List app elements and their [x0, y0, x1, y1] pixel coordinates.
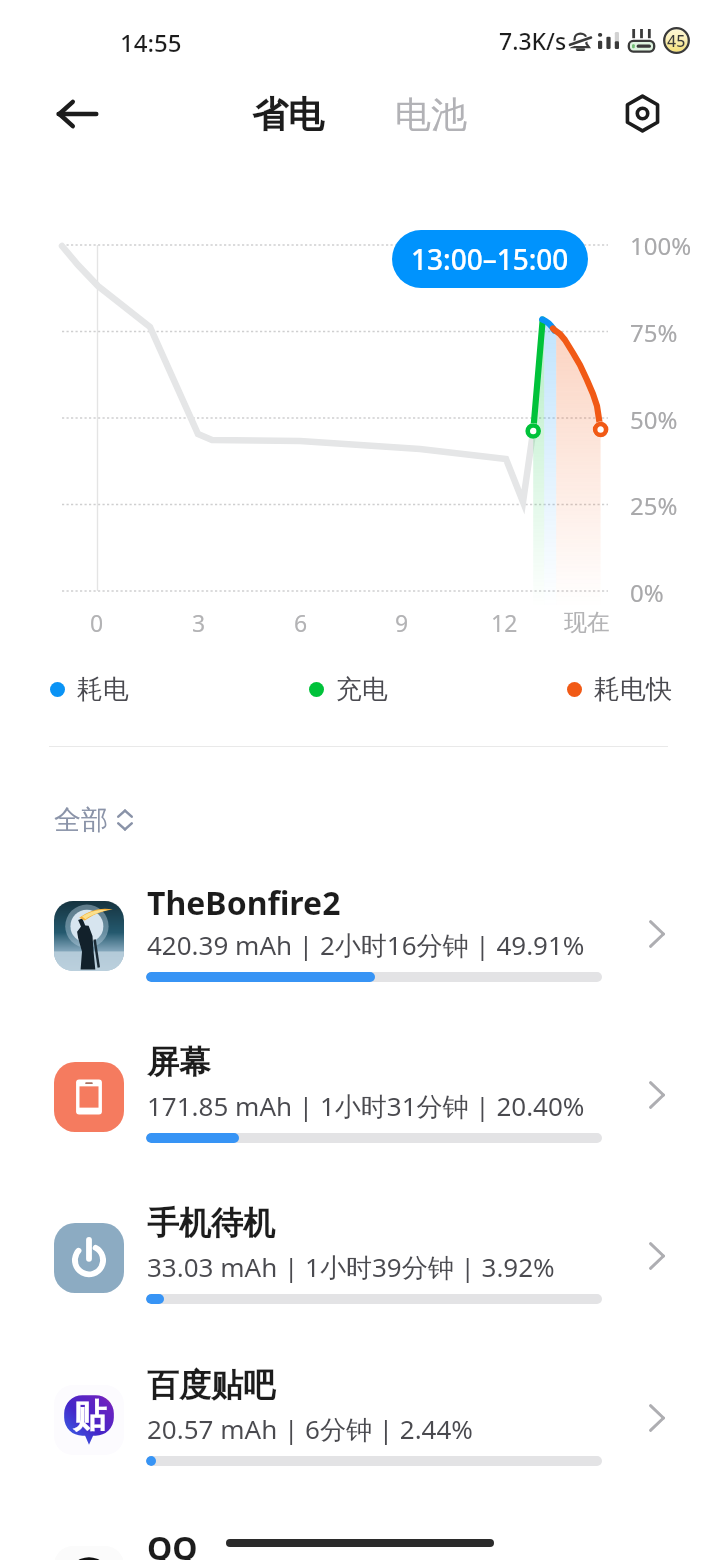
staticText: 45: [667, 30, 686, 52]
staticText: 现在: [564, 608, 610, 637]
button[interactable]: [0, 1359, 720, 1507]
button[interactable]: Back: [48, 85, 106, 143]
staticText: 33.03 mAh | 1小时39分钟 | 3.92%: [147, 1249, 555, 1285]
staticText: 耗电快: [594, 673, 672, 706]
button[interactable]: 耗电快: [567, 671, 672, 707]
staticText: 9: [395, 607, 409, 638]
button[interactable]: 13:00–15:00: [392, 230, 588, 288]
staticText: TheBonfire2: [147, 881, 341, 925]
staticText: 省电: [252, 92, 324, 137]
staticText: 百度贴吧: [147, 1365, 275, 1405]
button[interactable]: [0, 1197, 720, 1345]
staticText: 屏幕: [147, 1042, 211, 1082]
staticText: 3: [192, 607, 206, 638]
staticText: 13:00–15:00: [411, 240, 569, 278]
button[interactable]: [0, 1520, 720, 1560]
staticText: 电池: [395, 92, 467, 137]
button[interactable]: 充电: [309, 671, 388, 707]
staticText: 14:55: [120, 26, 182, 59]
staticText: 0: [90, 607, 104, 638]
staticText: 耗电: [77, 673, 129, 706]
staticText: 420.39 mAh | 2小时16分钟 | 49.91%: [147, 927, 585, 963]
staticText: 7.3K/s: [499, 25, 567, 56]
staticText: 0%: [630, 576, 664, 609]
button[interactable]: Settings: [613, 84, 672, 143]
staticText: 75%: [630, 316, 678, 349]
button[interactable]: 电池: [385, 86, 477, 143]
button[interactable]: 省电: [242, 86, 334, 143]
staticText: 12: [491, 607, 518, 638]
staticText: 全部: [54, 803, 108, 837]
staticText: 6: [294, 607, 308, 638]
staticText: 50%: [630, 403, 678, 436]
button[interactable]: 全部: [54, 798, 141, 842]
staticText: 100%: [630, 229, 692, 262]
staticText: 充电: [336, 673, 388, 706]
staticText: 25%: [630, 489, 678, 522]
staticText: QQ: [147, 1526, 198, 1560]
button[interactable]: 耗电: [50, 671, 129, 707]
staticText: 20.57 mAh | 6分钟 | 2.44%: [147, 1411, 473, 1447]
staticText: 手机待机: [147, 1203, 275, 1243]
button[interactable]: [0, 875, 720, 1023]
staticText: 171.85 mAh | 1小时31分钟 | 20.40%: [147, 1088, 585, 1124]
staticText: 贴: [73, 1395, 106, 1437]
button[interactable]: [0, 1036, 720, 1184]
